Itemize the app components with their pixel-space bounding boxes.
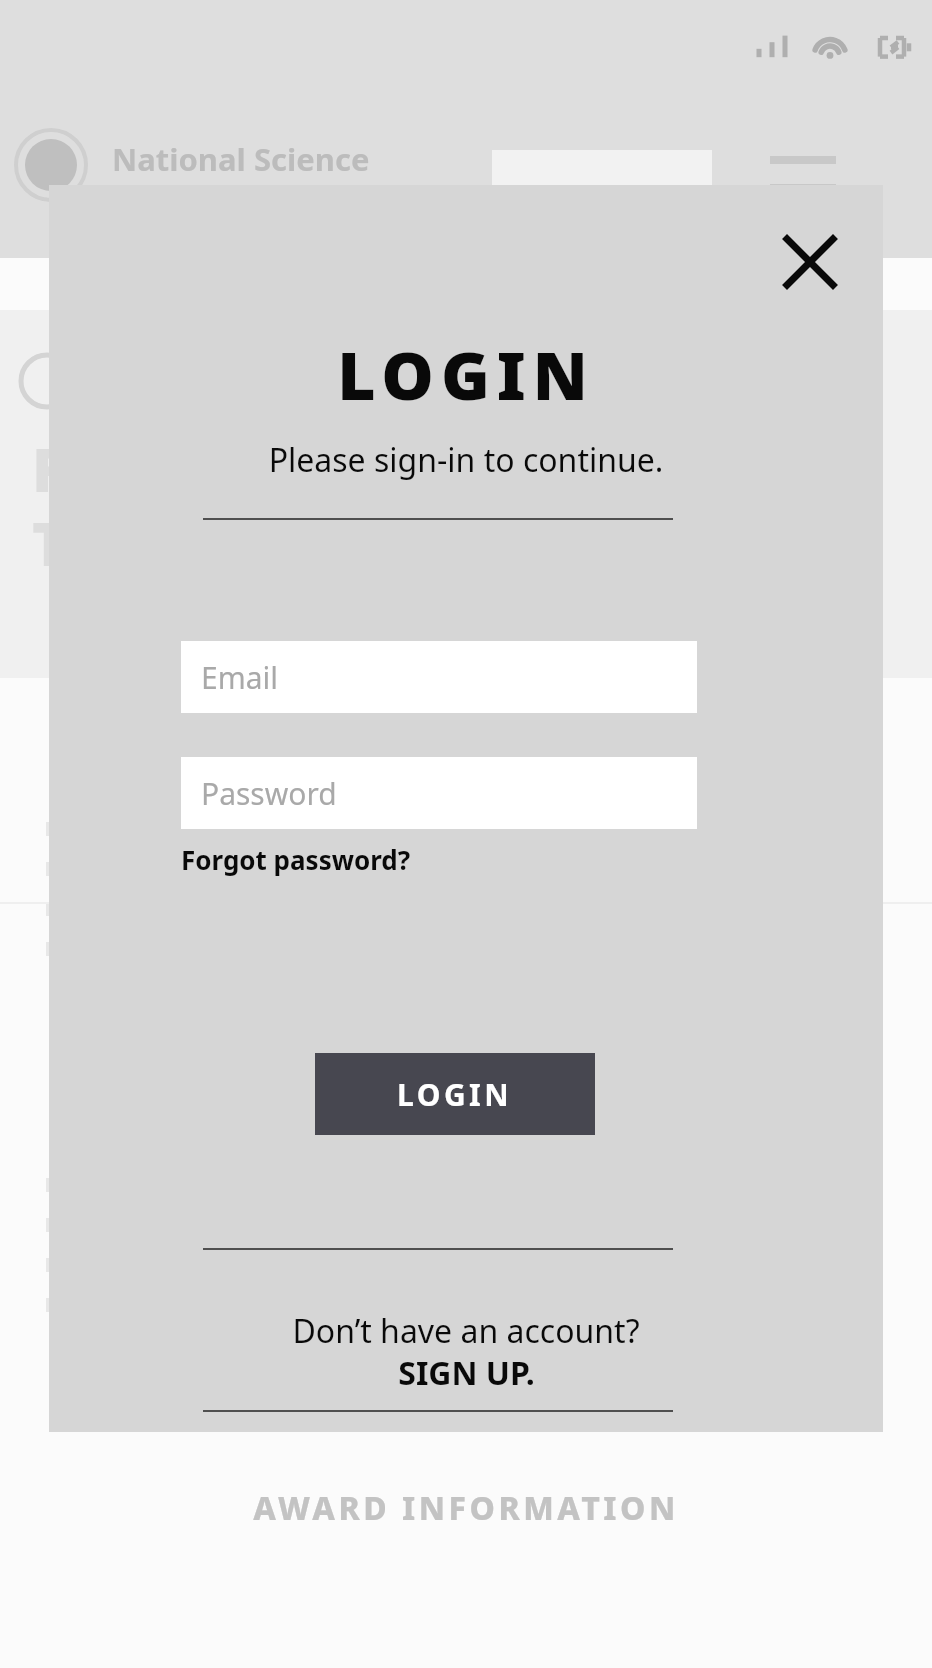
button[interactable]: SIGN UP. (49, 1351, 883, 1395)
staticText: SIGN UP. (398, 1351, 535, 1395)
button[interactable]: Email (181, 641, 697, 713)
button[interactable]: Password (181, 757, 697, 829)
staticText: AWARD INFORMATION (0, 1486, 932, 1530)
staticText: Password (201, 773, 337, 814)
staticText: LOGIN (49, 329, 883, 419)
staticText: Please sign-in to continue. (49, 438, 883, 482)
staticText: F (32, 428, 65, 510)
staticText: Email (201, 657, 279, 698)
button[interactable]: Close (764, 216, 856, 308)
button[interactable]: LOGIN (315, 1053, 595, 1135)
staticText: T (32, 502, 68, 584)
staticText: National Science (112, 138, 370, 180)
staticText: Don’t have an account? (49, 1309, 883, 1353)
button[interactable]: Forgot password? (181, 835, 411, 884)
staticText: Forgot password? (181, 842, 411, 877)
staticText: LOGIN (397, 1074, 513, 1115)
